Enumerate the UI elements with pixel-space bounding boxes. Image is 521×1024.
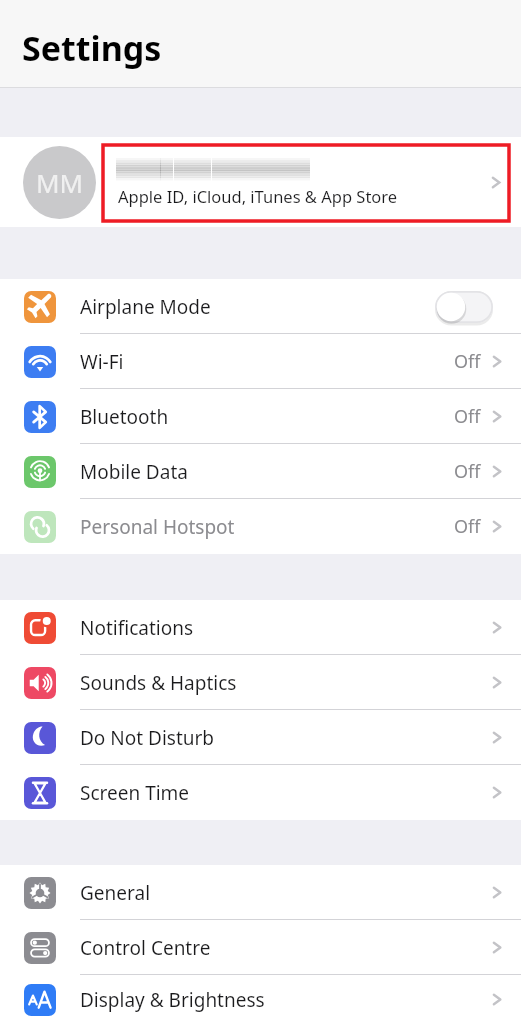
- button[interactable]: MM: [0, 137, 521, 227]
- button[interactable]: Airplane Mode: [0, 279, 521, 334]
- button[interactable]: General: [0, 865, 521, 920]
- staticText: Display & Brightness: [80, 987, 491, 1013]
- staticText: Screen Time: [80, 780, 491, 806]
- staticText: Off: [454, 514, 481, 539]
- button[interactable]: Control Centre: [0, 920, 521, 975]
- staticText: Personal Hotspot: [80, 514, 454, 540]
- button[interactable]: Screen Time: [0, 765, 521, 820]
- staticText: General: [80, 880, 491, 906]
- button[interactable]: Bluetooth: [0, 389, 521, 444]
- staticText: Notifications: [80, 615, 491, 641]
- button[interactable]: Do Not Disturb: [0, 710, 521, 765]
- button[interactable]: Personal Hotspot: [0, 499, 521, 554]
- staticText: Off: [454, 349, 481, 374]
- staticText: Apple ID, iCloud, iTunes & App Store: [118, 185, 398, 207]
- staticText: Off: [454, 404, 481, 429]
- button[interactable]: Wi-Fi: [0, 334, 521, 389]
- staticText: Wi-Fi: [80, 349, 454, 375]
- staticText: Airplane Mode: [80, 294, 435, 320]
- staticText: Mobile Data: [80, 459, 454, 485]
- button[interactable]: Display & Brightness: [0, 975, 521, 1024]
- button[interactable]: Mobile Data: [0, 444, 521, 499]
- staticText: Control Centre: [80, 935, 491, 961]
- staticText: Do Not Disturb: [80, 725, 491, 751]
- button[interactable]: Sounds & Haptics: [0, 655, 521, 710]
- staticText: Off: [454, 459, 481, 484]
- staticText: Sounds & Haptics: [80, 670, 491, 696]
- staticText: Bluetooth: [80, 404, 454, 430]
- staticText: Settings: [22, 25, 162, 71]
- staticText: MM: [36, 165, 84, 200]
- button[interactable]: Notifications: [0, 600, 521, 655]
